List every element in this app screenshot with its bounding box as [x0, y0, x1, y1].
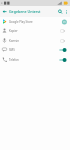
- button[interactable]: Disabled toggle: [59, 28, 68, 34]
- staticText: Komsin: [9, 39, 19, 43]
- staticText: SMS: [9, 48, 15, 52]
- button[interactable]: Google Play Store: [0, 17, 70, 26]
- button[interactable]: Back: [1, 8, 8, 15]
- button[interactable]: Kopier: [0, 26, 70, 35]
- staticText: Google Play Store: [9, 20, 33, 24]
- button[interactable]: SMS: [0, 45, 70, 54]
- button[interactable]: Komsin: [0, 36, 70, 45]
- button[interactable]: More options: [63, 9, 69, 15]
- button[interactable]: Enabled toggle: [59, 57, 68, 63]
- button[interactable]: Telefon: [0, 55, 70, 64]
- button[interactable]: Search: [56, 8, 63, 15]
- staticText: Gegebene Unterst: [9, 9, 41, 14]
- button[interactable]: Disabled toggle: [59, 38, 68, 44]
- staticText: Kopier: [9, 29, 18, 33]
- button[interactable]: Disabled toggle: [59, 19, 68, 25]
- staticText: Telefon: [9, 58, 19, 62]
- button[interactable]: Enabled toggle: [59, 47, 68, 53]
